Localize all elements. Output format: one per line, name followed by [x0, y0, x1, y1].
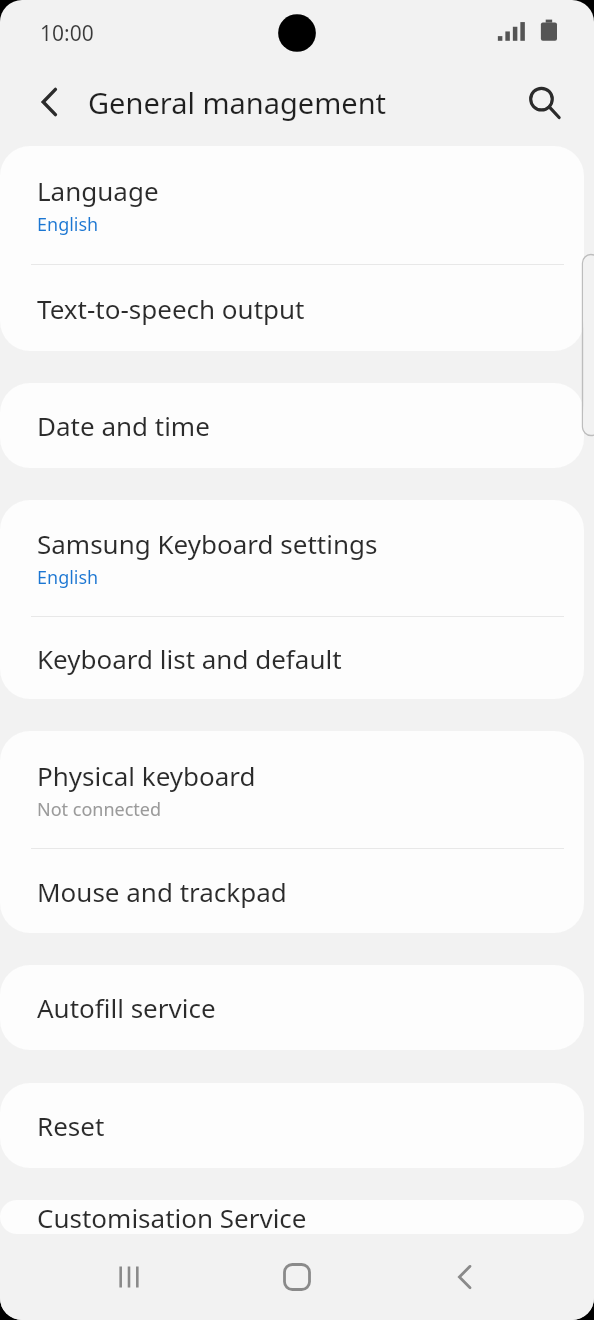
button[interactable]: Text-to-speech output: [0, 265, 584, 351]
button[interactable]: Back: [22, 74, 78, 130]
button[interactable]: Mouse and trackpad: [0, 849, 584, 933]
staticText: Physical keyboard: [37, 758, 256, 793]
staticText: General management: [88, 83, 387, 122]
staticText: 10:00: [40, 19, 94, 48]
staticText: Samsung Keyboard settings: [37, 526, 378, 561]
staticText: Reset: [37, 1108, 105, 1143]
button[interactable]: Home: [258, 1238, 336, 1316]
button[interactable]: Back: [426, 1238, 504, 1316]
staticText: Text-to-speech output: [37, 291, 305, 326]
button[interactable]: Physical keyboard: [0, 731, 584, 848]
button[interactable]: Keyboard list and default: [0, 617, 584, 699]
button[interactable]: Samsung Keyboard settings: [0, 500, 584, 616]
staticText: Keyboard list and default: [37, 641, 342, 676]
staticText: Language: [37, 173, 159, 208]
staticText: Customisation Service: [37, 1200, 307, 1234]
staticText: Not connected: [37, 797, 162, 822]
button[interactable]: Search: [516, 74, 572, 130]
button[interactable]: Recents: [90, 1238, 168, 1316]
staticText: Autofill service: [37, 990, 216, 1025]
staticText: Date and time: [37, 408, 210, 443]
button[interactable]: Date and time: [0, 383, 584, 468]
staticText: Mouse and trackpad: [37, 874, 287, 909]
staticText: English: [37, 212, 99, 237]
button[interactable]: Reset: [0, 1083, 584, 1168]
button[interactable]: Language: [0, 146, 584, 264]
staticText: English: [37, 565, 99, 590]
button[interactable]: Customisation Service: [0, 1200, 584, 1234]
button[interactable]: Autofill service: [0, 965, 584, 1050]
